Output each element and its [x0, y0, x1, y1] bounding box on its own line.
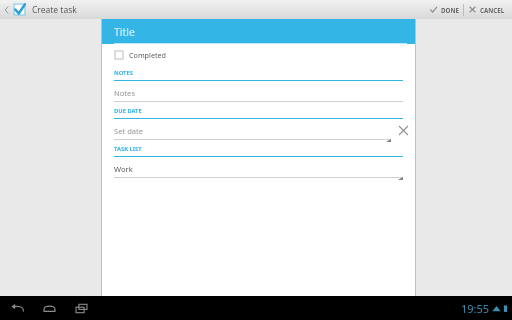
button[interactable]: Recent apps: [70, 296, 92, 320]
staticText: Notes: [114, 88, 136, 98]
staticText: DUE DATE: [114, 107, 142, 115]
button[interactable]: Back: [6, 296, 28, 320]
button[interactable]: CANCEL: [464, 0, 509, 19]
button[interactable]: Completed: [102, 44, 415, 66]
staticText: Title: [114, 25, 135, 39]
staticText: Set date: [114, 126, 144, 136]
button[interactable]: Notes: [102, 81, 415, 104]
staticText: CANCEL: [480, 6, 505, 14]
staticText: 19:55: [461, 301, 490, 316]
staticText: TASK LIST: [114, 145, 142, 153]
staticText: NOTES: [114, 69, 133, 77]
button[interactable]: Set date: [102, 119, 393, 142]
staticText: Create task: [32, 4, 77, 16]
button[interactable]: DONE: [425, 0, 463, 19]
button[interactable]: Clear due date: [393, 119, 413, 142]
staticText: DONE: [441, 6, 459, 14]
staticText: Completed: [129, 50, 167, 60]
button[interactable]: Title: [102, 19, 415, 44]
staticText: Work: [114, 164, 133, 174]
button[interactable]: Home: [38, 296, 60, 320]
button[interactable]: Work: [102, 157, 415, 180]
